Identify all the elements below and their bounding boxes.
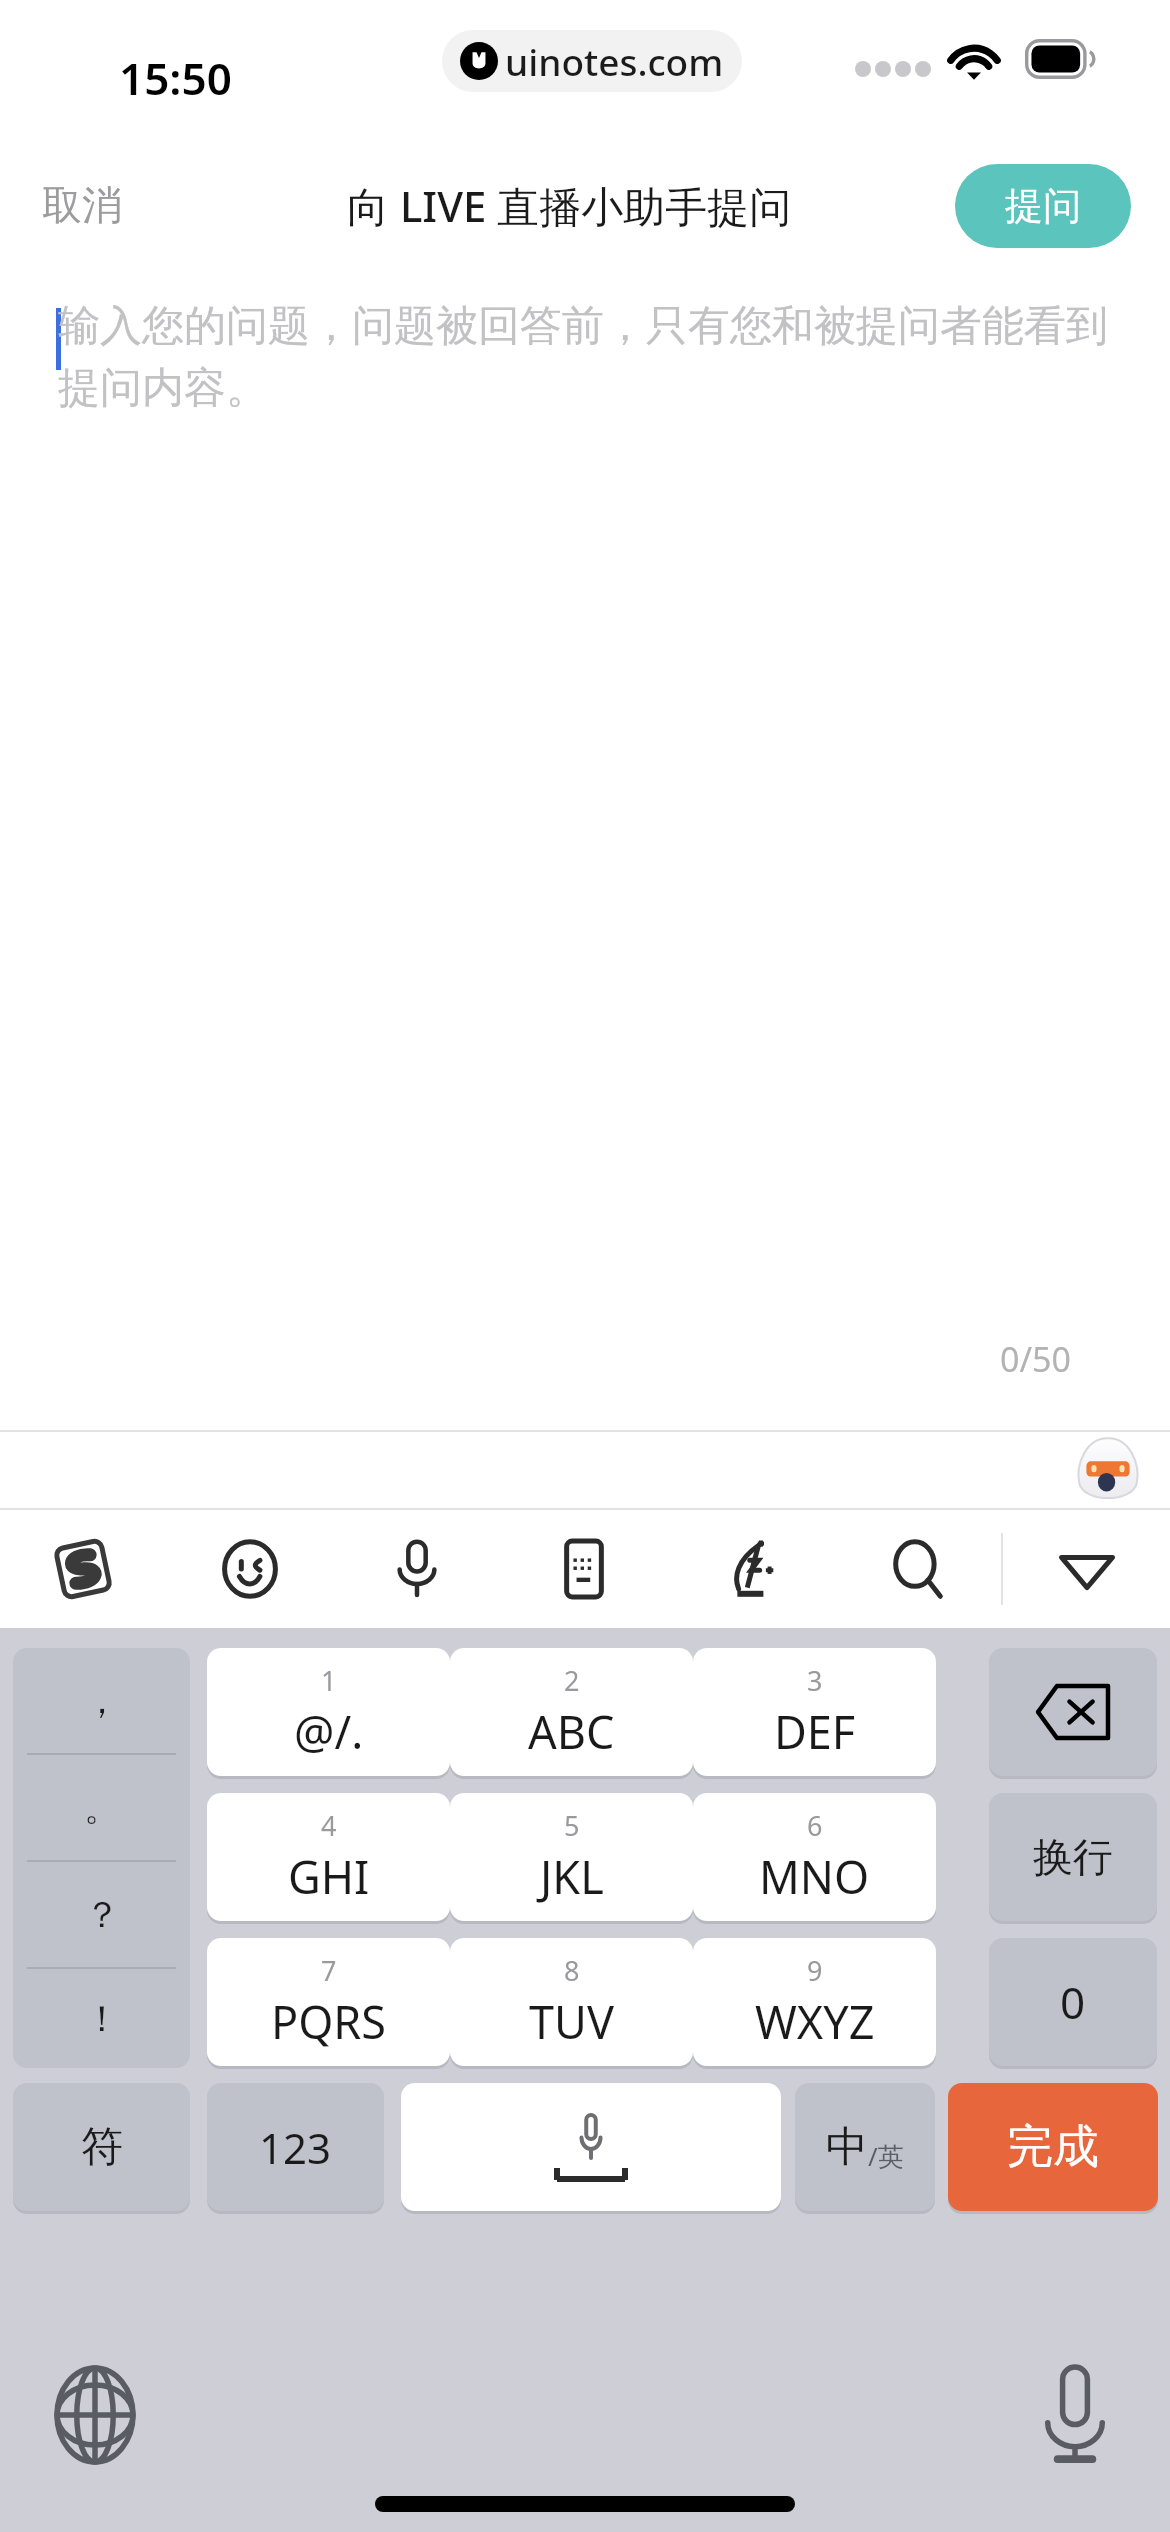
staticText: 5 xyxy=(564,1807,580,1844)
button[interactable]: Backspace xyxy=(989,1648,1157,1776)
button[interactable] xyxy=(0,280,1170,1370)
staticText: 。 xyxy=(84,1785,120,1830)
button[interactable]: 4 xyxy=(207,1793,450,1921)
staticText: uinotes.com xyxy=(505,36,724,86)
staticText: 0/50 xyxy=(1000,1336,1071,1382)
button[interactable]: Change keyboard language xyxy=(40,2360,150,2470)
button[interactable]: 提问 xyxy=(955,164,1131,248)
staticText: 0 xyxy=(1060,1972,1086,2032)
staticText: 6 xyxy=(807,1807,823,1844)
button[interactable]: 换行 xyxy=(989,1793,1157,1921)
button[interactable]: 2 xyxy=(450,1648,693,1776)
button[interactable]: 7 xyxy=(207,1938,450,2066)
staticText: 7 xyxy=(321,1952,337,1989)
button[interactable]: 123 xyxy=(207,2083,384,2211)
button[interactable]: 5 xyxy=(450,1793,693,1921)
button[interactable]: 6 xyxy=(693,1793,936,1921)
staticText: 15:50 xyxy=(119,48,232,108)
staticText: 取消 xyxy=(42,180,122,230)
staticText: ABC xyxy=(528,1701,615,1762)
staticText: 2 xyxy=(564,1662,580,1699)
staticText: 输入您的问题，问题被回答前，只有您和被提问者能看到提问内容。 xyxy=(58,300,1113,415)
staticText: PQRS xyxy=(271,1991,387,2052)
button[interactable]: Handwriting xyxy=(667,1510,834,1628)
button[interactable]: Hide keyboard xyxy=(1003,1510,1170,1628)
staticText: TUV xyxy=(529,1991,614,2052)
staticText: 4 xyxy=(321,1807,337,1844)
staticText: GHI xyxy=(288,1846,370,1907)
staticText: 换行 xyxy=(1033,1832,1113,1882)
staticText: 向 LIVE 直播小助手提问 xyxy=(347,177,792,234)
button[interactable]: 0 xyxy=(989,1938,1157,2066)
staticText: MNO xyxy=(759,1846,870,1907)
staticText: 1 xyxy=(321,1662,337,1699)
button[interactable]: 1 xyxy=(207,1648,450,1776)
staticText: 9 xyxy=(807,1952,823,1989)
button[interactable]: Space xyxy=(401,2083,781,2211)
staticText: 中 xyxy=(826,2121,868,2174)
staticText: 提问 xyxy=(1005,182,1081,230)
button[interactable]: Keyboard layout xyxy=(500,1510,667,1628)
staticText: ， xyxy=(84,1678,120,1723)
button[interactable]: ， xyxy=(13,1648,190,2068)
button[interactable]: Voice input xyxy=(333,1510,500,1628)
staticText: 3 xyxy=(807,1662,823,1699)
button[interactable]: 完成 xyxy=(948,2083,1158,2211)
button[interactable]: 3 xyxy=(693,1648,936,1776)
button[interactable]: 9 xyxy=(693,1938,936,2066)
staticText: 符 xyxy=(81,2121,123,2174)
button[interactable]: 中 xyxy=(795,2083,935,2211)
button[interactable]: Emoji xyxy=(166,1510,333,1628)
staticText: WXYZ xyxy=(755,1991,875,2052)
staticText: ！ xyxy=(84,1996,120,2041)
staticText: ？ xyxy=(84,1892,120,1937)
staticText: 8 xyxy=(564,1952,580,1989)
button[interactable]: 8 xyxy=(450,1938,693,2066)
staticText: @/. xyxy=(294,1701,364,1762)
button[interactable]: Voice input xyxy=(1020,2360,1130,2470)
staticText: /英 xyxy=(868,2138,904,2174)
staticText: DEF xyxy=(774,1701,856,1762)
button[interactable]: Sogou xyxy=(0,1510,166,1628)
staticText: 完成 xyxy=(1007,2118,1099,2176)
staticText: JKL xyxy=(540,1846,604,1907)
button[interactable]: 符 xyxy=(13,2083,190,2211)
staticText: 123 xyxy=(259,2119,332,2176)
button[interactable]: 取消 xyxy=(34,172,130,238)
button[interactable]: Search xyxy=(834,1510,1001,1628)
button[interactable]: Sticker xyxy=(1072,1434,1144,1506)
